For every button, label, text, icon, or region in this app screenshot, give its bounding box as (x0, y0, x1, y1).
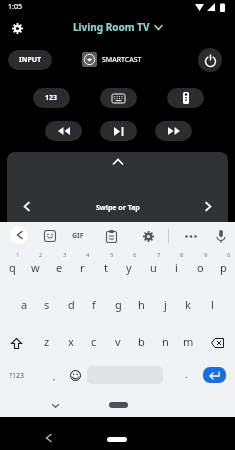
staticText: 4 (86, 251, 90, 259)
button[interactable]: 123 (33, 88, 70, 108)
button[interactable]: q (1, 253, 23, 281)
staticText: n (162, 334, 169, 349)
button[interactable]: k (177, 290, 199, 318)
button[interactable]: x (60, 327, 82, 355)
button[interactable]: v (107, 327, 129, 355)
staticText: k (185, 297, 191, 312)
staticText: Swipe or Tap (96, 203, 140, 213)
staticText: INPUT (19, 55, 42, 65)
button[interactable] (203, 367, 226, 383)
button[interactable] (12, 23, 23, 34)
button[interactable]: r (71, 253, 93, 281)
button[interactable]: ?123 (4, 367, 30, 385)
button[interactable] (6, 335, 26, 351)
staticText: l (211, 297, 214, 312)
button[interactable]: y (118, 253, 140, 281)
button[interactable] (100, 121, 137, 141)
button[interactable] (45, 121, 82, 141)
staticText: f (92, 297, 96, 312)
staticText: 1:05 (8, 2, 22, 12)
staticText: d (68, 297, 75, 312)
staticText: 0 (227, 251, 231, 259)
staticText: 3 (63, 251, 67, 259)
button[interactable] (107, 437, 127, 442)
staticText: SMARTCAST (102, 55, 142, 65)
button[interactable] (104, 227, 119, 245)
staticText: v (115, 334, 121, 349)
button[interactable] (40, 430, 56, 446)
staticText: r (80, 260, 85, 275)
button[interactable]: j (154, 290, 176, 318)
staticText: 1 (16, 251, 20, 259)
button[interactable]: o (189, 253, 211, 281)
staticText: ?123 (9, 371, 25, 381)
button[interactable]: Swipe or Tap (7, 152, 228, 222)
button[interactable] (141, 227, 156, 245)
staticText: o (197, 260, 204, 275)
staticText: 5 (110, 251, 114, 259)
button[interactable]: f (83, 290, 105, 318)
button[interactable]: b (130, 327, 152, 355)
staticText: q (9, 260, 16, 275)
button[interactable] (198, 48, 222, 72)
staticText: GIF (72, 231, 84, 241)
button[interactable]: GIF (70, 227, 85, 245)
button[interactable]: SMARTCAST (82, 52, 142, 67)
staticText: t (104, 260, 108, 275)
button[interactable] (109, 402, 128, 408)
staticText: a (21, 297, 28, 312)
staticText: w (31, 260, 40, 275)
button[interactable]: d (60, 290, 82, 318)
staticText: j (164, 297, 167, 312)
staticText: z (44, 334, 50, 349)
button[interactable]: a (13, 290, 35, 318)
button[interactable] (206, 335, 228, 351)
staticText: Living Room TV (73, 20, 150, 34)
button[interactable] (183, 227, 198, 245)
button[interactable]: s (36, 290, 58, 318)
button[interactable]: . (180, 367, 192, 381)
button[interactable]: t (95, 253, 117, 281)
staticText: 2 (39, 251, 43, 259)
button[interactable]: c (83, 327, 105, 355)
button[interactable]: p (212, 253, 234, 281)
staticText: h (138, 297, 145, 312)
button[interactable] (44, 398, 66, 414)
staticText: 8 (180, 251, 184, 259)
button[interactable]: g (107, 290, 129, 318)
button[interactable] (10, 226, 28, 244)
button[interactable]: h (130, 290, 152, 318)
staticText: 9 (204, 251, 208, 259)
button[interactable] (167, 88, 204, 108)
button[interactable]: i (165, 253, 187, 281)
staticText: p (220, 260, 227, 275)
button[interactable]: w (24, 253, 46, 281)
button[interactable] (68, 367, 83, 383)
button[interactable]: z (36, 327, 58, 355)
staticText: x (68, 334, 74, 349)
button[interactable]: m (177, 327, 199, 355)
staticText: y (126, 260, 132, 275)
staticText: , (53, 370, 56, 382)
button[interactable] (42, 227, 57, 245)
button[interactable] (213, 227, 228, 245)
staticText: 7 (157, 251, 161, 259)
staticText: e (56, 260, 63, 275)
button[interactable]: l (201, 290, 223, 318)
staticText: 123 (45, 93, 58, 103)
button[interactable] (100, 88, 137, 108)
button[interactable]: INPUT (8, 50, 52, 70)
button[interactable]: n (154, 327, 176, 355)
staticText: b (138, 334, 145, 349)
staticText: s (44, 297, 50, 312)
staticText: 6 (133, 251, 137, 259)
staticText: m (183, 334, 194, 349)
button[interactable]: Living Room TV (0, 18, 235, 36)
staticText: c (91, 334, 97, 349)
button[interactable]: u (142, 253, 164, 281)
button[interactable]: , (48, 369, 60, 383)
staticText: g (115, 297, 122, 312)
button[interactable] (155, 121, 192, 141)
button[interactable]: e (48, 253, 70, 281)
